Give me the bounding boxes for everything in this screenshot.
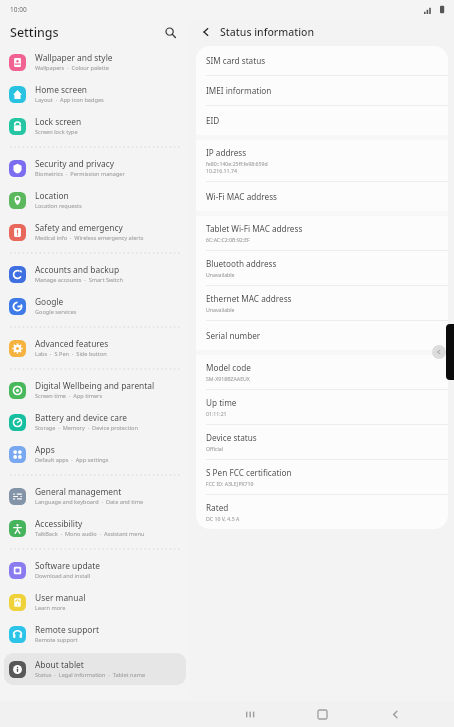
staticText: Battery and device care [35,412,127,423]
button[interactable]: IP address [196,140,448,182]
staticText: Storage · Memory · Device protection [35,424,138,432]
button[interactable]: Tablet Wi-Fi MAC address [196,216,448,251]
button[interactable]: Wi-Fi MAC address [196,182,448,211]
staticText: Manage accounts · Smart Switch [35,276,123,284]
button[interactable]: Ethernet MAC address [196,286,448,321]
staticText: 01:11:21 [206,410,227,417]
staticText: Language and keyboard · Date and time [35,498,144,506]
staticText: Apps [35,444,55,455]
staticText: Unavailable [206,306,235,313]
button[interactable]: Google [4,290,186,322]
staticText: Screen lock type [35,128,78,136]
staticText: Lock screen [35,116,82,127]
staticText: Layout · App icon badges [35,96,104,104]
button[interactable]: Digital Wellbeing and parental controls [4,374,186,406]
button[interactable]: Rated [196,495,448,529]
staticText: General management [35,486,122,497]
staticText: Up time [206,397,237,408]
button[interactable]: Lock screen [4,110,186,142]
staticText: EID [206,115,220,126]
staticText: 10.216.11.74 [206,167,237,174]
staticText: About tablet [35,659,84,670]
staticText: Medical info · Wireless emergency alerts [35,234,144,242]
staticText: Wallpaper and style [35,52,113,63]
staticText: Ethernet MAC address [206,293,292,304]
staticText: Learn more [35,604,66,612]
staticText: Biometrics · Permission manager [35,170,125,178]
button[interactable]: Recent apps [237,701,263,727]
staticText: Tablet Wi-Fi MAC address [206,223,303,234]
staticText: Safety and emergency [35,222,123,233]
staticText: Labs · S Pen · Side button [35,350,107,358]
staticText: Home screen [35,84,88,95]
staticText: IMEI information [206,85,272,96]
staticText: Serial number [206,330,261,341]
staticText: Digital Wellbeing and parental controls [35,380,180,391]
button[interactable]: Security and privacy [4,152,186,184]
staticText: Google services [35,308,77,316]
button[interactable]: Back [196,22,216,42]
staticText: 6C:AC:C2:0B:92:EF [206,236,250,243]
button[interactable]: User manual [4,586,186,618]
staticText: Status · Legal information · Tablet name [35,671,146,679]
button[interactable]: EID [196,106,448,135]
staticText: Screen time · App timers [35,392,103,400]
button[interactable]: Search [160,22,180,42]
staticText: Remote support [35,636,78,644]
staticText: Location [35,190,69,201]
staticText: 10:00 [10,5,27,14]
staticText: Wallpapers · Colour palette [35,64,109,72]
staticText: Default apps · App settings [35,456,109,464]
staticText: S Pen FCC certification [206,467,292,478]
staticText: Device status [206,432,257,443]
button[interactable]: IMEI information [196,76,448,106]
staticText: TalkBack · Mono audio · Assistant menu [35,530,145,538]
staticText: DC 10 V, 4.5 A [206,515,240,522]
button[interactable]: Location [4,184,186,216]
staticText: Wi-Fi MAC address [206,191,277,202]
staticText: FCC ID: A3LEJPX710 [206,480,254,487]
staticText: Location requests [35,202,82,210]
staticText: IP address [206,147,247,158]
button[interactable]: Software update [4,554,186,586]
button[interactable]: Accessibility [4,512,186,544]
staticText: Google [35,296,64,307]
staticText: Software update [35,560,101,571]
staticText: Model code [206,362,251,373]
button[interactable]: Safety and emergency [4,216,186,248]
staticText: Official [206,445,224,452]
button[interactable]: Advanced features [4,332,186,364]
button[interactable]: Model code [196,355,448,390]
button[interactable]: Edge panel handle [446,324,454,380]
button[interactable]: SIM card status [196,46,448,76]
button[interactable]: General management [4,480,186,512]
button[interactable]: Battery and device care [4,406,186,438]
button[interactable]: Bluetooth address [196,251,448,286]
staticText: Accessibility [35,518,83,529]
button[interactable]: Home screen [4,78,186,110]
staticText: fe80::140e:25ff:fe98:659d [206,160,268,167]
staticText: Bluetooth address [206,258,277,269]
staticText: User manual [35,592,86,603]
staticText: Download and install [35,572,91,580]
staticText: Rated [206,502,229,513]
staticText: SM-X918BZAAEUX [206,375,250,382]
button[interactable]: Back [382,701,408,727]
staticText: Status information [220,25,315,39]
button[interactable]: Serial number [196,321,448,350]
staticText: SIM card status [206,55,266,66]
button[interactable]: Wallpaper and style [4,46,186,78]
staticText: Remote support [35,624,99,635]
staticText: Settings [10,24,59,41]
button[interactable]: Up time [196,390,448,425]
button[interactable]: Home [309,701,335,727]
button[interactable]: Device status [196,425,448,460]
button[interactable]: S Pen FCC certification [196,460,448,495]
staticText: Advanced features [35,338,109,349]
staticText: Security and privacy [35,158,114,169]
button[interactable]: About tablet [4,653,186,685]
button[interactable]: Remote support [4,618,186,650]
staticText: Accounts and backup [35,264,120,275]
button[interactable]: Accounts and backup [4,258,186,290]
button[interactable]: Apps [4,438,186,470]
